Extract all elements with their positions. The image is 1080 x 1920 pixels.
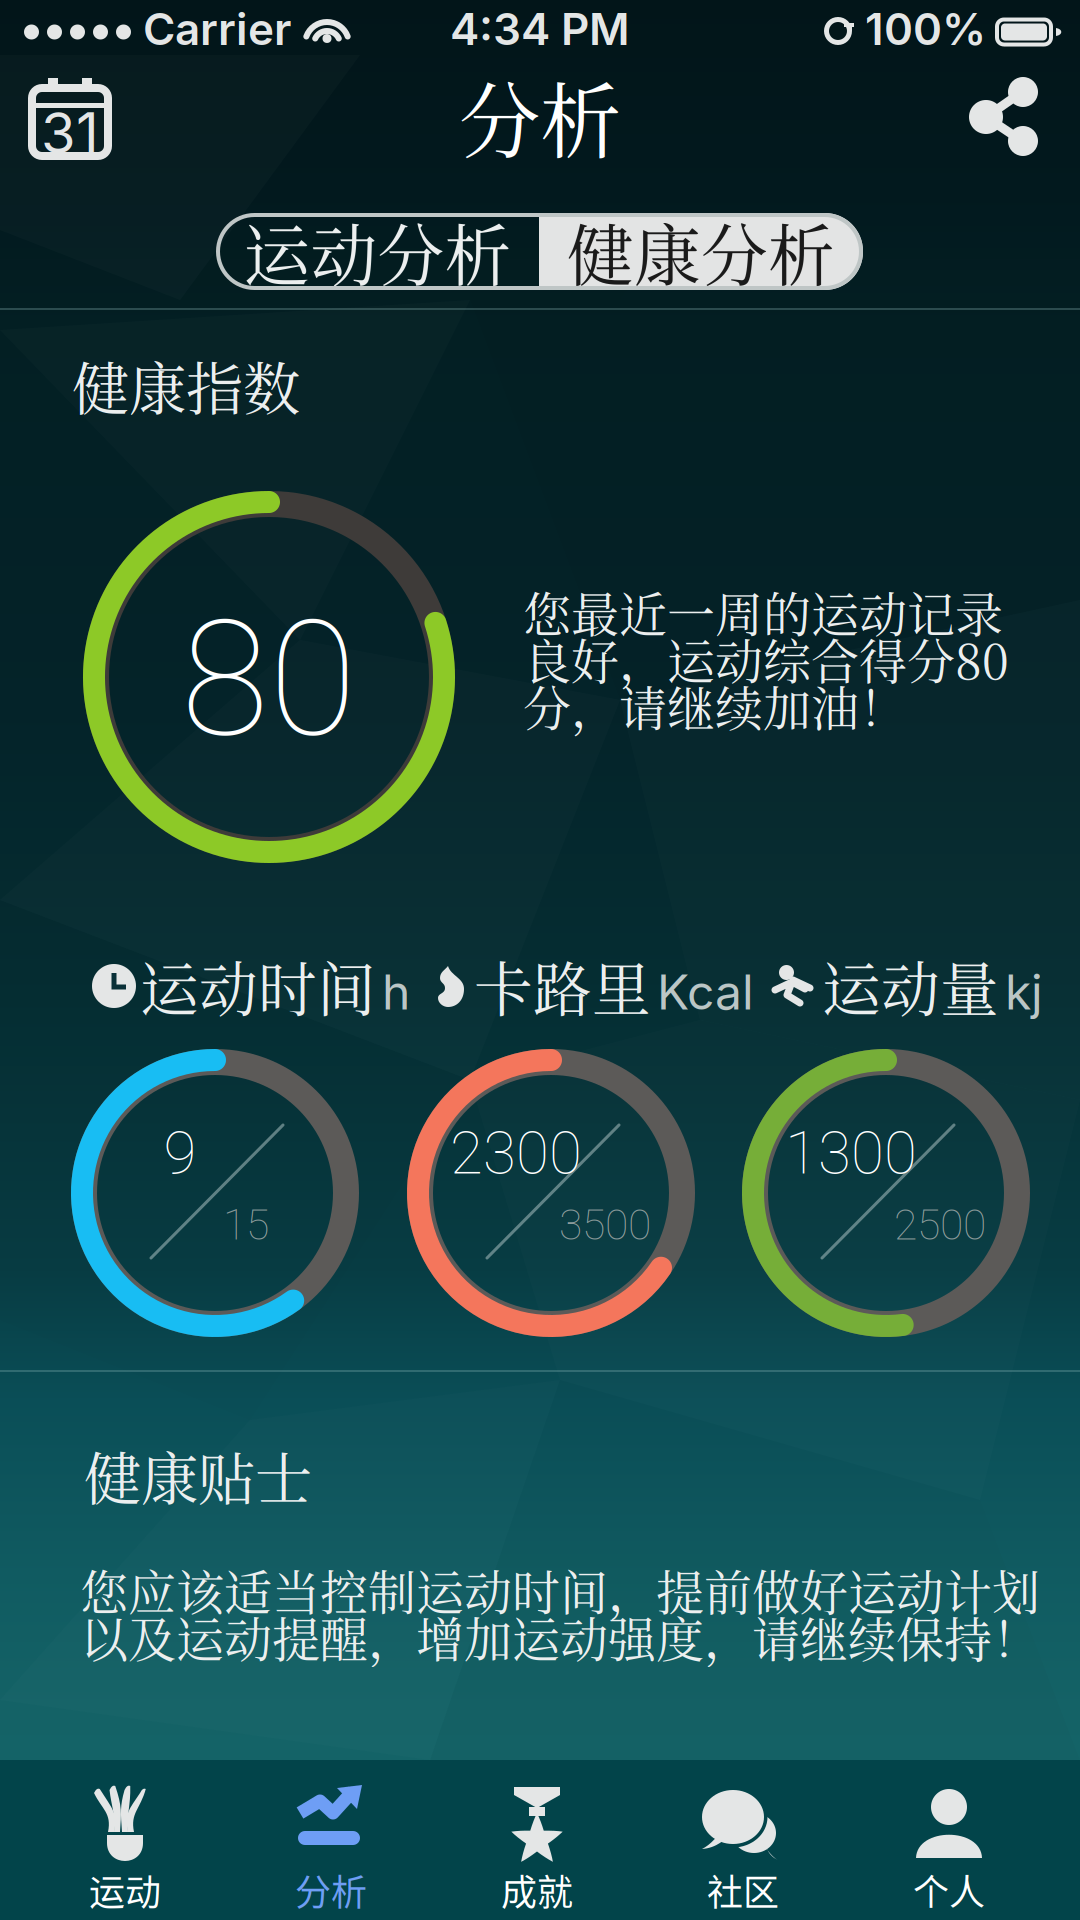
staticText: 成就 <box>501 1864 573 1916</box>
button[interactable]: Share <box>950 62 1070 172</box>
staticText: 卡路里 <box>474 944 651 1028</box>
staticText: 2500 <box>894 1200 986 1250</box>
staticText: 分析 <box>295 1864 367 1916</box>
staticText: 健康贴士 <box>84 1434 312 1516</box>
button[interactable]: 运动分析 <box>216 213 539 290</box>
staticText: 分，请继续加油！ <box>523 671 907 740</box>
staticText: 运动时间 <box>140 944 376 1028</box>
button[interactable]: 社区 <box>640 1760 846 1920</box>
staticText: 您最近一周的运动记录 <box>523 577 1003 646</box>
staticText: 1300 <box>785 1118 917 1188</box>
staticText: Kcal <box>657 963 754 1021</box>
staticText: 分析 <box>459 58 621 174</box>
staticText: 4:34 PM <box>450 2 630 56</box>
staticText: 良好，运动综合得分80 <box>523 624 1009 693</box>
staticText: 社区 <box>707 1864 779 1916</box>
button[interactable]: 分析 <box>228 1760 434 1920</box>
staticText: h <box>382 963 410 1021</box>
staticText: 以及运动提醒，增加运动强度，请继续保持！ <box>80 1602 1040 1671</box>
button[interactable]: 运动 <box>22 1760 228 1920</box>
staticText: 100% <box>865 2 986 56</box>
staticText: 健康分析 <box>567 204 835 299</box>
staticText: 运动分析 <box>243 204 511 299</box>
staticText: 您应该适当控制运动时间，提前做好运动计划 <box>80 1555 1040 1624</box>
staticText: 健康指数 <box>72 344 300 426</box>
button[interactable]: 健康分析 <box>539 213 863 290</box>
staticText: 31 <box>41 99 99 167</box>
staticText: 9 <box>163 1118 196 1188</box>
staticText: 运动量 <box>822 944 999 1028</box>
staticText: 80 <box>181 585 357 773</box>
button[interactable]: 个人 <box>846 1760 1052 1920</box>
button[interactable]: 成就 <box>434 1760 640 1920</box>
button[interactable]: Calendar <box>12 66 132 176</box>
staticText: 15 <box>223 1200 269 1250</box>
staticText: 个人 <box>913 1864 985 1916</box>
staticText: 运动 <box>89 1864 161 1916</box>
staticText: 2300 <box>450 1118 582 1188</box>
staticText: Carrier <box>143 2 291 56</box>
staticText: kj <box>1005 963 1043 1021</box>
staticText: 3500 <box>559 1200 651 1250</box>
